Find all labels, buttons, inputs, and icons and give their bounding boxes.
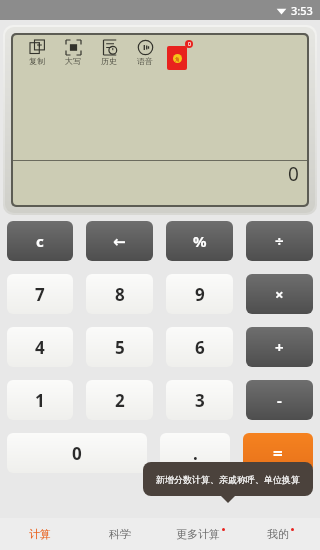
staticText: c — [36, 231, 44, 251]
staticText: 3:53 — [291, 3, 313, 18]
staticText: 7 — [35, 283, 45, 306]
staticText: 0 — [72, 442, 82, 465]
staticText: 科学 — [109, 527, 131, 541]
staticText: + — [275, 337, 284, 357]
staticText: 6 — [195, 336, 205, 359]
staticText: ← — [113, 233, 126, 250]
button[interactable]: 2 — [86, 380, 153, 420]
staticText: 角 — [175, 56, 180, 62]
staticText: 8 — [115, 283, 125, 306]
button[interactable]: 8 — [86, 274, 153, 314]
staticText: 4 — [35, 336, 45, 359]
button[interactable]: 9 — [166, 274, 233, 314]
button[interactable]: 4 — [7, 327, 73, 367]
staticText: = — [273, 442, 283, 465]
staticText: . — [193, 442, 198, 465]
staticText: 1 — [35, 389, 45, 412]
button[interactable]: 5 — [86, 327, 153, 367]
button[interactable]: 6 — [166, 327, 233, 367]
staticText: 语音 — [137, 56, 153, 66]
staticText: % — [193, 231, 207, 251]
staticText: 计算 — [29, 527, 51, 541]
button[interactable]: 语音 — [127, 40, 163, 66]
button[interactable]: 1 — [7, 380, 73, 420]
staticText: 复制 — [29, 56, 45, 66]
staticText: 历史 — [101, 56, 117, 66]
button[interactable]: 复制 — [19, 40, 55, 66]
button[interactable]: . — [160, 433, 230, 473]
button[interactable]: 7 — [7, 274, 73, 314]
staticText: 9 — [195, 283, 205, 306]
staticText: 0 — [188, 41, 191, 48]
staticText: 我的 — [267, 527, 289, 541]
staticText: ÷ — [275, 231, 284, 251]
staticText: 更多计算 — [176, 527, 220, 541]
button[interactable]: % — [166, 221, 233, 261]
staticText: 5 — [115, 336, 125, 359]
button[interactable]: 0 — [7, 433, 147, 473]
button[interactable]: 红包 — [167, 40, 193, 70]
button[interactable]: 更多计算 — [160, 518, 240, 550]
button[interactable]: × — [246, 274, 313, 314]
staticText: 0 — [288, 161, 299, 187]
staticText: - — [277, 390, 282, 410]
button[interactable]: 新增分数计算、亲戚称呼、单位换算 — [143, 462, 313, 496]
button[interactable]: 我的 — [240, 518, 320, 550]
button[interactable]: ÷ — [246, 221, 313, 261]
button[interactable]: 3 — [166, 380, 233, 420]
button[interactable]: = — [243, 433, 313, 473]
button[interactable]: c — [7, 221, 73, 261]
button[interactable]: - — [246, 380, 313, 420]
button[interactable]: 大写 — [55, 40, 91, 66]
button[interactable]: 科学 — [80, 518, 160, 550]
staticText: 3 — [195, 389, 205, 412]
button[interactable]: ← — [86, 221, 153, 261]
staticText: × — [275, 284, 284, 304]
staticText: 大写 — [65, 56, 81, 66]
button[interactable]: + — [246, 327, 313, 367]
staticText: 新增分数计算、亲戚称呼、单位换算 — [156, 474, 300, 485]
button[interactable]: 历史 — [91, 40, 127, 66]
button[interactable]: 计算 — [0, 518, 80, 550]
staticText: 2 — [115, 389, 125, 412]
